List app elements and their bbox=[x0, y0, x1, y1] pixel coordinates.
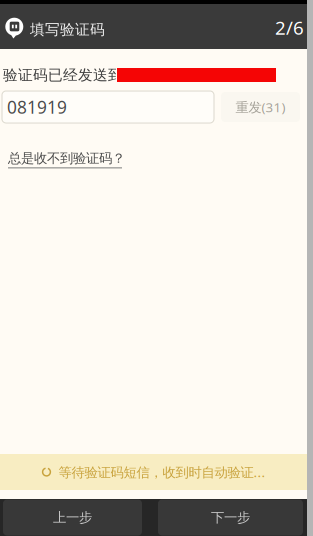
staticText: 等待验证码短信，收到时自动验证... bbox=[58, 463, 265, 481]
staticText: 重发(31) bbox=[235, 98, 285, 116]
staticText: 下一步 bbox=[211, 509, 250, 526]
staticText: 填写验证码 bbox=[30, 20, 105, 38]
staticText: 081919 bbox=[7, 95, 67, 118]
staticText: 验证码已经发送到 bbox=[3, 66, 123, 84]
staticText: 总是收不到验证码？ bbox=[8, 150, 125, 166]
button[interactable]: 总是收不到验证码？ bbox=[0, 123, 125, 168]
button[interactable]: 上一步 bbox=[3, 499, 142, 535]
button[interactable]: 重发(31) bbox=[221, 92, 300, 122]
staticText: 2/6 bbox=[275, 15, 304, 40]
button[interactable]: 下一步 bbox=[158, 499, 303, 535]
staticText: 上一步 bbox=[53, 509, 92, 526]
